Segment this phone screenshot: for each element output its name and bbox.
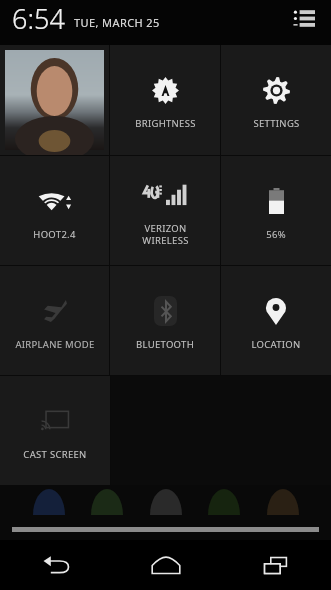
staticText: 6:54 <box>12 0 65 37</box>
button[interactable]: Battery <box>221 156 331 265</box>
button[interactable]: Settings <box>221 45 331 155</box>
button[interactable]: Cast screen <box>0 376 110 485</box>
staticText: VERIZON WIRELESS <box>142 222 189 247</box>
button[interactable]: Location <box>221 266 331 375</box>
button[interactable]: Wi-Fi <box>0 156 109 265</box>
staticText: 56% <box>266 228 286 241</box>
button[interactable]: Notifications list <box>289 4 319 34</box>
staticText: SETTINGS <box>253 117 300 130</box>
staticText: TUE, MARCH 25 <box>74 15 160 30</box>
staticText: AIRPLANE MODE <box>15 338 95 351</box>
staticText: HOOT2.4 <box>33 228 76 241</box>
button[interactable]: Mobile data <box>110 156 220 265</box>
button[interactable]: Back <box>0 540 111 590</box>
staticText: CAST SCREEN <box>23 448 87 461</box>
button[interactable]: User photo <box>0 45 109 155</box>
button[interactable]: Airplane mode <box>0 266 109 375</box>
button[interactable]: Recent apps <box>221 540 331 590</box>
staticText: LOCATION <box>251 338 301 351</box>
staticText: BRIGHTNESS <box>135 117 196 130</box>
button[interactable]: Home <box>111 540 221 590</box>
button[interactable]: Brightness <box>110 45 220 155</box>
staticText: BLUETOOTH <box>136 338 194 351</box>
button[interactable]: Bluetooth <box>110 266 220 375</box>
